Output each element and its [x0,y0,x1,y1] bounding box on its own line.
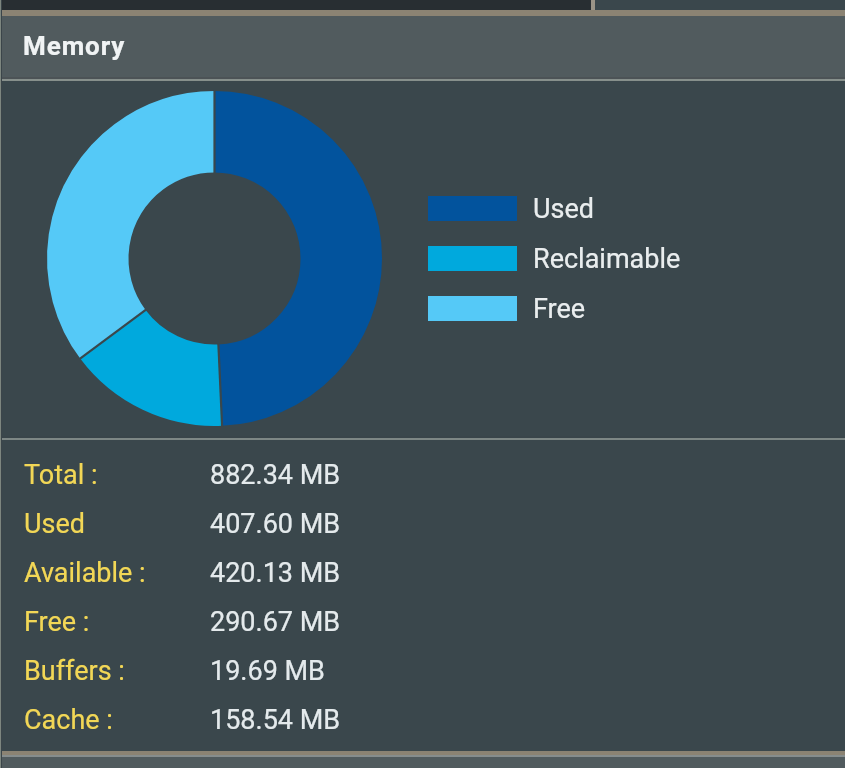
staticText: 420.13 MB [210,557,341,589]
button[interactable]: Used [428,184,758,234]
staticText: Total : [24,459,98,491]
staticText: 19.69 MB [210,655,325,687]
staticText: Used [533,193,594,225]
staticText: 882.34 MB [210,459,341,491]
button[interactable]: Free : [0,597,845,646]
staticText: Buffers : [24,655,125,687]
button[interactable]: Total : [0,450,845,499]
button[interactable]: Memory usage donut chart [45,89,384,428]
button[interactable]: Reclaimable [428,234,758,284]
staticText: Free : [24,606,90,638]
staticText: Used [24,508,85,540]
button[interactable]: Free [428,284,758,334]
staticText: Available : [24,557,146,589]
staticText: 407.60 MB [210,508,341,540]
button[interactable]: Buffers : [0,646,845,695]
staticText: Reclaimable [533,243,681,275]
button[interactable]: Cache : [0,695,845,744]
staticText: 290.67 MB [210,606,341,638]
staticText: Memory [23,31,126,61]
button[interactable]: Used [0,499,845,548]
staticText: Cache : [24,704,113,736]
staticText: Free [533,293,586,325]
staticText: 158.54 MB [210,704,341,736]
button[interactable]: Available : [0,548,845,597]
button[interactable]: Memory [0,16,845,77]
